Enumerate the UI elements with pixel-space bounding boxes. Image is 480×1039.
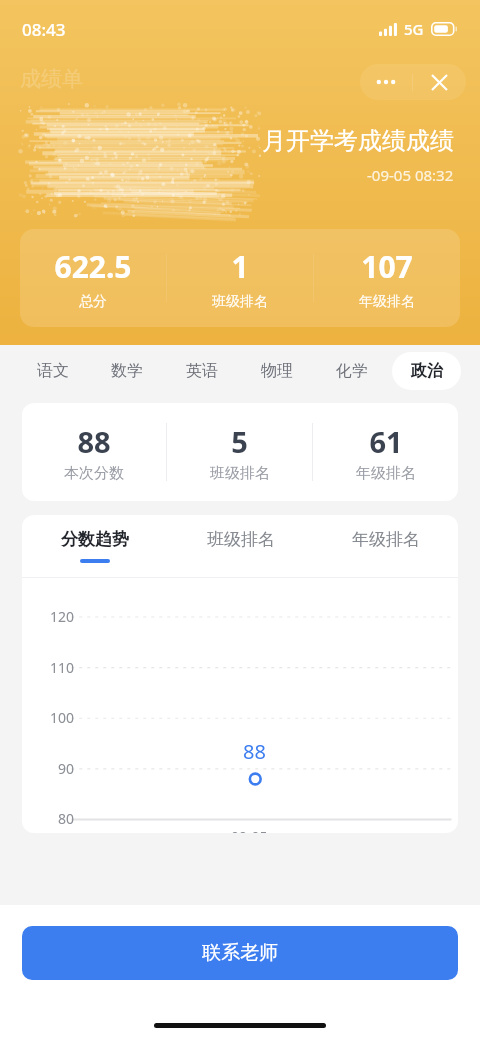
staticText: 联系老师 bbox=[202, 941, 278, 965]
staticText: 本次分数 bbox=[64, 464, 124, 483]
staticText: 分数趋势 bbox=[61, 529, 129, 550]
staticText: 数学 bbox=[111, 361, 143, 381]
button[interactable]: 政治 bbox=[392, 352, 461, 390]
staticText: 5 bbox=[231, 422, 248, 461]
staticText: 年级排名 bbox=[352, 529, 420, 550]
staticText: 英语 bbox=[186, 361, 218, 381]
staticText: 90 bbox=[57, 759, 74, 778]
button[interactable]: 化学 bbox=[317, 352, 386, 390]
staticText: 物理 bbox=[261, 361, 293, 381]
button[interactable]: More options bbox=[360, 64, 412, 100]
staticText: 班级排名 bbox=[207, 529, 275, 550]
staticText: 120 bbox=[49, 607, 74, 626]
staticText: 政治 bbox=[411, 361, 443, 381]
staticText: 107 bbox=[361, 246, 413, 287]
button[interactable]: 年级排名 bbox=[313, 515, 458, 577]
staticText: -09-05 08:32 bbox=[367, 165, 454, 185]
button[interactable]: 英语 bbox=[167, 352, 236, 390]
staticText: 总分 bbox=[79, 293, 107, 311]
staticText: 622.5 bbox=[54, 246, 132, 287]
staticText: 5G bbox=[404, 19, 424, 39]
staticText: 88 bbox=[243, 738, 266, 765]
staticText: 100 bbox=[49, 708, 74, 727]
staticText: 80 bbox=[57, 809, 74, 828]
button[interactable]: 物理 bbox=[242, 352, 311, 390]
staticText: 年级排名 bbox=[356, 464, 416, 483]
button[interactable]: Close bbox=[413, 64, 466, 100]
staticText: 09-05 bbox=[231, 827, 268, 833]
button[interactable]: 数学 bbox=[93, 352, 161, 390]
button[interactable]: 分数趋势 bbox=[22, 515, 168, 577]
staticText: 61 bbox=[369, 422, 403, 461]
staticText: 110 bbox=[49, 658, 74, 677]
staticText: 化学 bbox=[336, 361, 368, 381]
staticText: 月开学考成绩成绩 bbox=[262, 126, 454, 156]
staticText: 年级排名 bbox=[359, 293, 415, 311]
staticText: 语文 bbox=[37, 361, 69, 381]
button[interactable]: 语文 bbox=[19, 352, 87, 390]
staticText: 班级排名 bbox=[210, 464, 270, 483]
button[interactable]: 班级排名 bbox=[168, 515, 313, 577]
staticText: 88 bbox=[77, 422, 111, 461]
staticText: 08:43 bbox=[22, 18, 66, 41]
button[interactable]: 联系老师 bbox=[22, 926, 458, 980]
staticText: 成绩单 bbox=[20, 66, 83, 92]
staticText: 1 bbox=[231, 246, 249, 287]
staticText: 班级排名 bbox=[212, 293, 268, 311]
